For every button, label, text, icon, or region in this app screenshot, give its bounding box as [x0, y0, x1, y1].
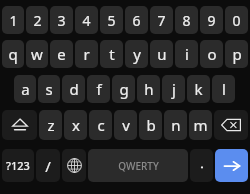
- staticText: x: [72, 115, 80, 135]
- button[interactable]: d: [62, 75, 85, 103]
- staticText: z: [47, 115, 55, 135]
- button[interactable]: a: [14, 75, 36, 103]
- staticText: n: [171, 115, 181, 135]
- staticText: c: [97, 115, 105, 135]
- staticText: i: [185, 44, 189, 64]
- staticText: e: [57, 44, 66, 64]
- button[interactable]: p: [225, 40, 248, 68]
- staticText: p: [232, 44, 242, 64]
- staticText: QWERTY: [118, 159, 159, 173]
- button[interactable]: r: [75, 40, 98, 68]
- button[interactable]: l: [212, 75, 235, 103]
- staticText: 4: [82, 11, 91, 30]
- button[interactable]: w: [26, 40, 48, 68]
- button[interactable]: n: [164, 110, 187, 140]
- button[interactable]: 4: [75, 6, 98, 34]
- staticText: l: [222, 79, 226, 99]
- staticText: t: [109, 44, 115, 64]
- button[interactable]: 7: [150, 6, 173, 34]
- staticText: f: [96, 79, 102, 99]
- button[interactable]: 8: [175, 6, 198, 34]
- button[interactable]: x: [64, 110, 87, 140]
- staticText: a: [21, 79, 30, 99]
- button[interactable]: 3: [50, 6, 73, 34]
- button[interactable]: i: [175, 40, 198, 68]
- button[interactable]: 0: [225, 6, 248, 34]
- staticText: o: [207, 44, 217, 64]
- button[interactable]: Period: [190, 149, 213, 182]
- button[interactable]: s: [38, 75, 60, 103]
- staticText: r: [83, 44, 90, 64]
- button[interactable]: c: [89, 110, 112, 140]
- staticText: /: [45, 156, 51, 176]
- staticText: 5: [107, 11, 116, 30]
- staticText: m: [193, 115, 208, 135]
- button[interactable]: z: [39, 110, 62, 140]
- staticText: j: [172, 79, 176, 99]
- button[interactable]: ?123: [2, 149, 34, 182]
- staticText: 2: [33, 11, 42, 30]
- staticText: v: [122, 115, 130, 135]
- button[interactable]: e: [50, 40, 73, 68]
- button[interactable]: b: [139, 110, 162, 140]
- button[interactable]: 6: [125, 6, 148, 34]
- button[interactable]: y: [125, 40, 148, 68]
- staticText: 1: [9, 11, 18, 30]
- button[interactable]: t: [100, 40, 123, 68]
- button[interactable]: q: [2, 40, 24, 68]
- staticText: h: [144, 79, 154, 99]
- button[interactable]: k: [187, 75, 210, 103]
- button[interactable]: Shift: [2, 110, 37, 140]
- button[interactable]: h: [137, 75, 160, 103]
- button[interactable]: o: [200, 40, 223, 68]
- button[interactable]: Backspace: [214, 110, 248, 140]
- button[interactable]: 2: [26, 6, 48, 34]
- button[interactable]: 9: [200, 6, 223, 34]
- button[interactable]: v: [114, 110, 137, 140]
- staticText: s: [45, 79, 53, 99]
- staticText: k: [194, 79, 203, 99]
- staticText: u: [157, 44, 167, 64]
- staticText: 0: [232, 11, 241, 30]
- staticText: d: [69, 79, 79, 99]
- staticText: g: [119, 79, 129, 99]
- staticText: y: [133, 44, 141, 64]
- button[interactable]: Enter: [215, 149, 248, 182]
- button[interactable]: QWERTY: [88, 149, 188, 182]
- staticText: 7: [157, 11, 166, 30]
- staticText: 3: [57, 11, 66, 30]
- staticText: ?123: [6, 158, 30, 173]
- staticText: w: [31, 44, 43, 64]
- staticText: b: [146, 115, 156, 135]
- button[interactable]: g: [112, 75, 135, 103]
- button[interactable]: /: [36, 149, 60, 182]
- staticText: 8: [182, 11, 191, 30]
- staticText: 6: [132, 11, 141, 30]
- button[interactable]: 5: [100, 6, 123, 34]
- button[interactable]: j: [162, 75, 185, 103]
- button[interactable]: Change keyboard language: [62, 149, 86, 182]
- staticText: q: [8, 44, 18, 64]
- staticText: 9: [207, 11, 216, 30]
- button[interactable]: m: [189, 110, 212, 140]
- button[interactable]: 1: [2, 6, 24, 34]
- button[interactable]: f: [87, 75, 110, 103]
- button[interactable]: u: [150, 40, 173, 68]
